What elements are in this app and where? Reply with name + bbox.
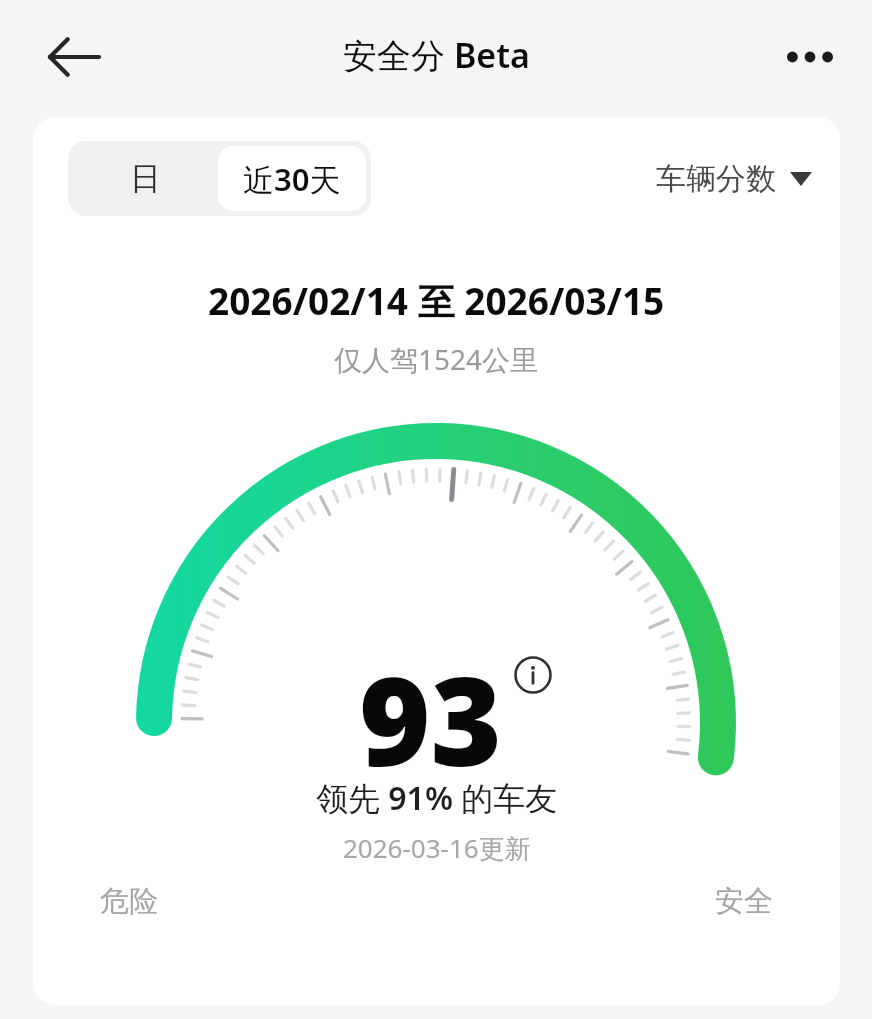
staticText: 93 xyxy=(359,636,502,802)
staticText: 日 xyxy=(130,159,161,198)
staticText: 危险 xyxy=(100,883,158,920)
button[interactable]: 近30天 xyxy=(218,146,366,211)
staticText: 车辆分数 xyxy=(656,160,776,198)
staticText: 仅人驾1524公里 xyxy=(334,340,539,378)
staticText: 安全分 Beta xyxy=(343,32,530,78)
staticText: 2026/02/14 至 2026/03/15 xyxy=(208,275,665,326)
staticText: 安全 xyxy=(715,883,773,920)
button[interactable]: Score info xyxy=(512,654,554,696)
staticText: 2026-03-16更新 xyxy=(343,830,531,866)
button[interactable]: 日 xyxy=(73,146,218,211)
button[interactable]: More options xyxy=(770,17,850,97)
button[interactable]: Back xyxy=(30,13,118,101)
button[interactable]: 车辆分数 xyxy=(648,150,820,208)
staticText: 领先 91% 的车友 xyxy=(316,776,558,820)
staticText: 近30天 xyxy=(243,158,341,200)
